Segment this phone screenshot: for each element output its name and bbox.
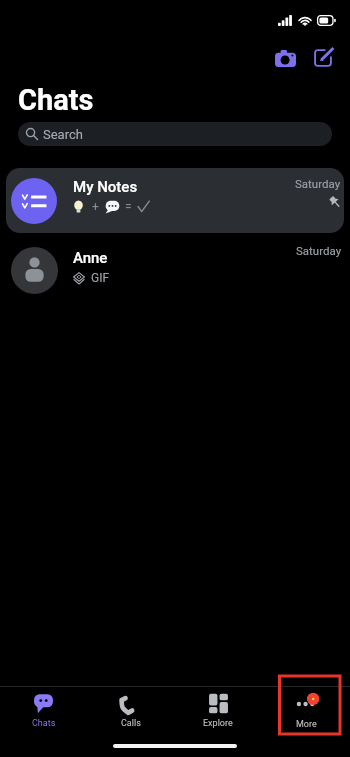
staticText: Chats bbox=[32, 718, 56, 729]
button[interactable]: More bbox=[262, 687, 350, 734]
staticText: Anne bbox=[73, 249, 108, 267]
staticText: = bbox=[125, 200, 132, 214]
button[interactable]: Anne bbox=[0, 242, 350, 298]
staticText: Search bbox=[43, 127, 83, 142]
button[interactable]: New chat bbox=[305, 40, 341, 76]
staticText: More bbox=[296, 719, 317, 730]
button[interactable]: Calls bbox=[87, 687, 174, 734]
button[interactable]: Explore bbox=[174, 687, 262, 734]
staticText: GIF bbox=[91, 271, 110, 285]
staticText: My Notes bbox=[73, 178, 138, 196]
staticText: Saturday bbox=[295, 177, 341, 190]
button[interactable]: Camera bbox=[267, 40, 303, 76]
button[interactable]: Search bbox=[18, 122, 332, 146]
staticText: Calls bbox=[121, 718, 141, 729]
staticText: + bbox=[92, 200, 99, 214]
button[interactable]: Chats bbox=[0, 687, 87, 734]
staticText: Saturday bbox=[296, 244, 342, 257]
staticText: Explore bbox=[203, 718, 233, 729]
staticText: Chats bbox=[18, 83, 94, 117]
button[interactable]: My Notes bbox=[6, 168, 344, 233]
